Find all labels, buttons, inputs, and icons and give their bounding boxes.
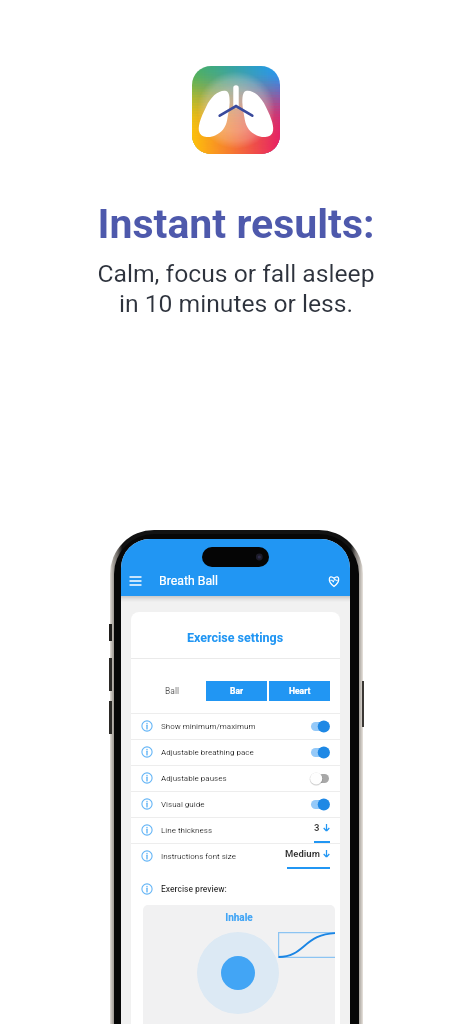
- staticText: Line thickness: [161, 826, 213, 835]
- staticText: Adjustable breathing pace: [161, 748, 254, 757]
- staticText: Instant results:: [0, 200, 472, 248]
- button[interactable]: Disabled: [310, 772, 330, 785]
- staticText: Visual guide: [161, 800, 205, 809]
- staticText: Medium: [285, 848, 320, 859]
- button[interactable]: 3: [314, 817, 330, 843]
- button[interactable]: Enabled: [310, 720, 330, 733]
- button[interactable]: Bar: [206, 681, 267, 701]
- button[interactable]: Show minimum/maximum: [131, 713, 340, 739]
- button[interactable]: Heart rate monitor: [324, 571, 344, 591]
- staticText: Heart: [289, 686, 311, 696]
- button[interactable]: Adjustable pauses: [131, 765, 340, 791]
- staticText: Exercise settings: [187, 630, 284, 645]
- button[interactable]: Enabled: [310, 746, 330, 759]
- button[interactable]: Heart: [269, 681, 330, 701]
- button[interactable]: Open navigation menu: [125, 571, 145, 591]
- staticText: 3: [314, 822, 320, 833]
- staticText: Show minimum/maximum: [161, 722, 256, 731]
- button[interactable]: Medium: [285, 843, 330, 869]
- button[interactable]: Exercise preview:: [131, 877, 340, 901]
- staticText: Inhale: [143, 912, 335, 924]
- staticText: Ball: [165, 686, 180, 696]
- staticText: Instructions font size: [161, 852, 236, 861]
- staticText: Calm, focus or fall asleep in 10 minutes…: [0, 259, 472, 318]
- staticText: Adjustable pauses: [161, 774, 227, 783]
- staticText: Exercise preview:: [161, 884, 227, 894]
- button[interactable]: Adjustable breathing pace: [131, 739, 340, 765]
- button[interactable]: Instructions font size: [131, 843, 340, 869]
- button[interactable]: Visual guide: [131, 791, 340, 817]
- button[interactable]: Line thickness: [131, 817, 340, 843]
- staticText: Breath Ball: [159, 574, 219, 588]
- button[interactable]: Enabled: [310, 798, 330, 811]
- staticText: Bar: [230, 686, 244, 696]
